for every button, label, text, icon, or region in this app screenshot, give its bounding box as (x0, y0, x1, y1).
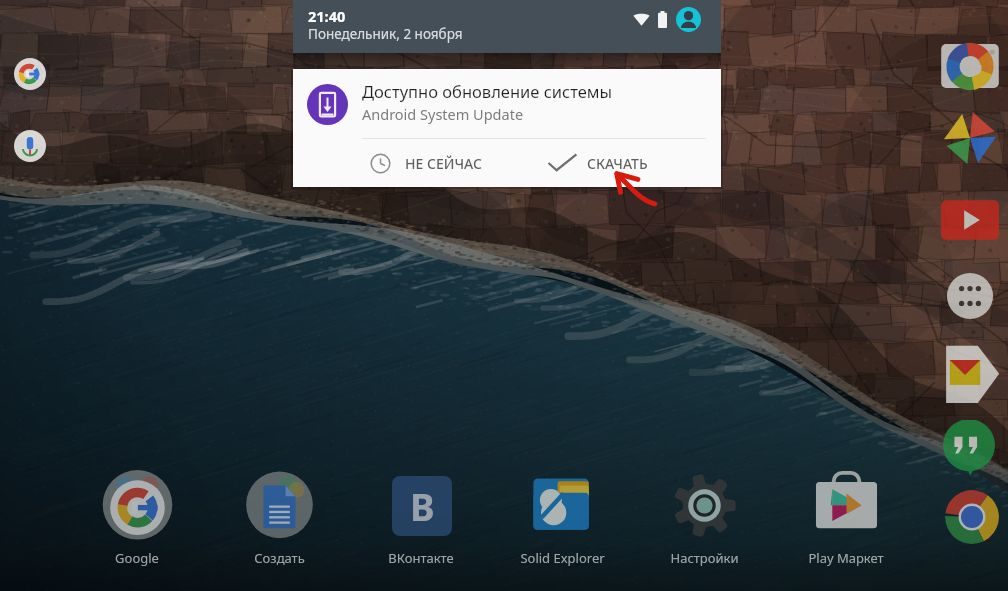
staticText: Создать (254, 549, 305, 567)
button[interactable]: НЕ СЕЙЧАС (370, 139, 562, 187)
button[interactable]: Gmail (940, 344, 1001, 406)
button[interactable]: Google (79, 470, 195, 567)
staticText: Google (115, 549, 159, 567)
button[interactable]: All apps (946, 272, 994, 320)
staticText: Android System Update (362, 104, 524, 124)
button[interactable]: Solid Explorer (504, 470, 620, 567)
button[interactable]: Hangouts (943, 420, 995, 476)
button[interactable]: Создать (221, 470, 337, 567)
button[interactable] (293, 69, 721, 138)
button[interactable]: Настройки (646, 470, 762, 567)
button[interactable]: СКАЧАТЬ (547, 139, 721, 187)
staticText: Доступно обновление системы (362, 80, 612, 102)
button[interactable]: Google Search (14, 58, 46, 90)
staticText: СКАЧАТЬ (587, 154, 648, 173)
button[interactable]: Play Маркет (788, 470, 904, 567)
staticText: B (410, 481, 435, 531)
button[interactable]: Camera (940, 42, 1000, 92)
staticText: 21:40 (308, 6, 346, 26)
button[interactable]: Chrome (944, 489, 1000, 545)
staticText: ВКонтакте (388, 549, 454, 567)
button[interactable]: User profile (676, 7, 701, 32)
staticText: Solid Explorer (520, 549, 605, 567)
staticText: Настройки (670, 549, 739, 567)
staticText: Понедельник, 2 ноября (308, 25, 463, 43)
button[interactable]: Photos (941, 110, 999, 166)
button[interactable]: YouTube (941, 198, 999, 242)
staticText: НЕ СЕЙЧАС (405, 154, 482, 173)
button[interactable]: B (363, 470, 479, 567)
staticText: Play Маркет (808, 549, 884, 567)
button[interactable]: Voice search (14, 130, 46, 162)
